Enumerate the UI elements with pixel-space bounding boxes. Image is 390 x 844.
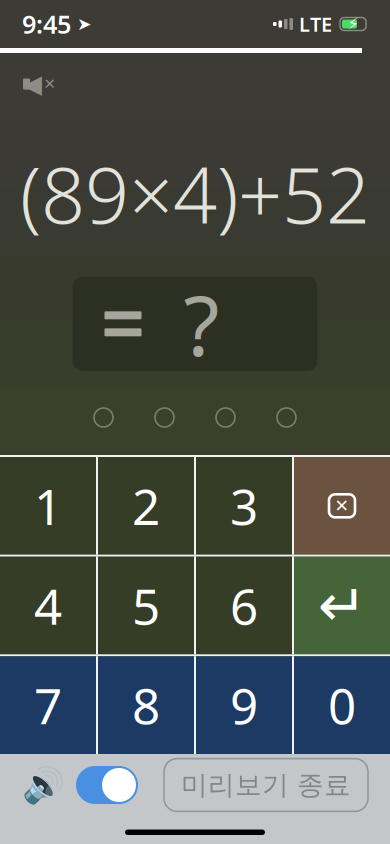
staticText: 4 xyxy=(34,573,62,638)
staticText: (89×4)+52 xyxy=(20,142,370,245)
staticText: ✕ xyxy=(334,496,349,516)
button[interactable]: 9 xyxy=(196,656,292,754)
staticText: 8 xyxy=(132,672,160,738)
staticText: 🔊 xyxy=(21,765,64,805)
button[interactable]: 4 xyxy=(0,557,96,654)
button[interactable]: 0 xyxy=(294,656,390,754)
button[interactable]: Sound toggle xyxy=(76,766,138,804)
staticText: 9:45 xyxy=(22,7,71,41)
staticText: 1 xyxy=(34,473,62,539)
button[interactable]: 미리보기 종료 xyxy=(164,759,368,811)
staticText: 2 xyxy=(132,473,160,539)
staticText: ? xyxy=(183,269,219,379)
staticText: 9 xyxy=(230,672,258,738)
button[interactable]: 6 xyxy=(196,557,292,654)
button[interactable]: 8 xyxy=(98,656,194,754)
button[interactable]: 3 xyxy=(196,457,292,555)
button[interactable]: Muted xyxy=(12,63,66,105)
button[interactable]: Delete xyxy=(294,457,390,555)
staticText: 미리보기 종료 xyxy=(181,769,351,801)
button[interactable]: 5 xyxy=(98,557,194,654)
button[interactable]: Sound xyxy=(22,764,64,806)
staticText: ⚡︎ xyxy=(347,15,358,33)
staticText: 5 xyxy=(132,573,160,638)
staticText: 6 xyxy=(230,573,258,638)
button[interactable]: Enter xyxy=(294,557,390,654)
button[interactable]: 1 xyxy=(0,457,96,555)
staticText: 3 xyxy=(230,473,258,539)
staticText: 7 xyxy=(34,672,62,738)
staticText: ➤ xyxy=(77,14,92,34)
staticText: ↵ xyxy=(317,572,366,639)
button[interactable]: 2 xyxy=(98,457,194,555)
staticText: ◀ xyxy=(22,70,41,98)
staticText: ✕ xyxy=(43,76,55,92)
button[interactable]: 7 xyxy=(0,656,96,754)
staticText: 0 xyxy=(328,672,356,738)
staticText: LTE xyxy=(299,11,332,37)
